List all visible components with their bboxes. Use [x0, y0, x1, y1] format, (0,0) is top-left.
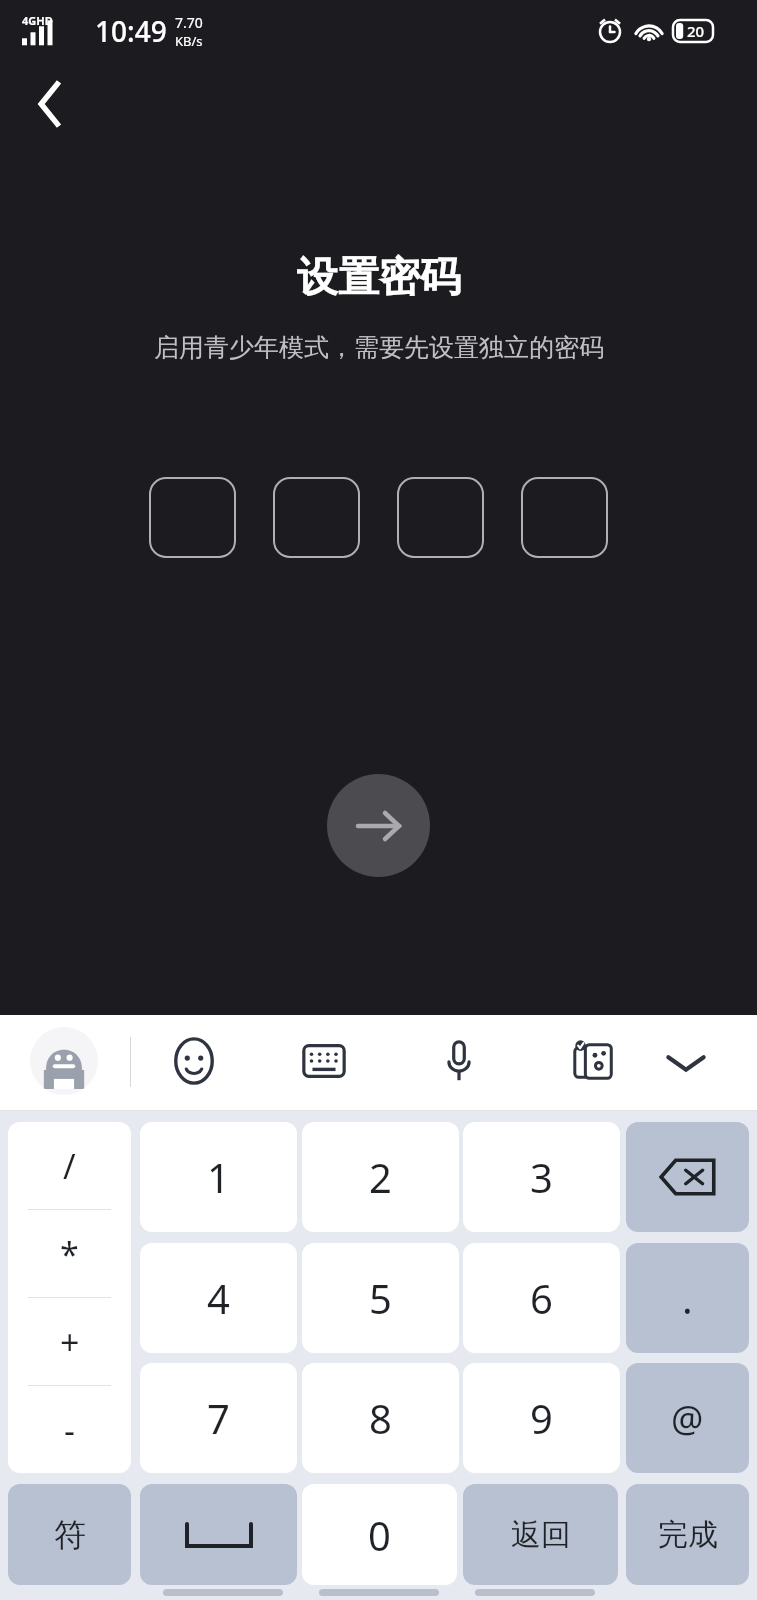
button[interactable]: 符 [8, 1484, 131, 1585]
staticText: 启用青少年模式，需要先设置独立的密码 [154, 332, 604, 363]
button[interactable]: 4 [140, 1243, 297, 1353]
staticText: 10:49 [95, 12, 167, 50]
staticText: KB/s [175, 32, 203, 50]
button[interactable]: 2 [302, 1122, 459, 1232]
staticText: + [60, 1319, 80, 1365]
staticText: 0 [368, 1508, 391, 1562]
button[interactable]: 9 [463, 1363, 620, 1473]
button[interactable]: 0 [302, 1484, 457, 1585]
staticText: 4GHD [22, 13, 53, 28]
button[interactable]: * [8, 1210, 131, 1297]
staticText: 7.70 [175, 13, 203, 32]
button[interactable]: / [8, 1122, 131, 1209]
staticText: 返回 [511, 1516, 571, 1554]
staticText: @ [671, 1394, 704, 1443]
button[interactable]: Input method avatar [30, 1027, 98, 1095]
staticText: 20 [687, 21, 705, 41]
staticText: 3 [530, 1150, 553, 1204]
button[interactable]: Keyboard [290, 1027, 358, 1095]
button[interactable]: Back [18, 72, 82, 136]
staticText: - [64, 1407, 75, 1453]
button[interactable]: + [8, 1298, 131, 1385]
staticText: 2 [369, 1150, 392, 1204]
staticText: 9 [530, 1391, 553, 1445]
staticText: 5 [369, 1271, 392, 1325]
button[interactable]: 5 [302, 1243, 459, 1353]
button[interactable] [149, 477, 236, 558]
staticText: * [60, 1231, 79, 1277]
button[interactable]: . [626, 1243, 749, 1353]
staticText: 4 [207, 1271, 230, 1325]
button[interactable]: Next [327, 774, 430, 877]
button[interactable]: 3 [463, 1122, 620, 1232]
staticText: / [63, 1143, 76, 1189]
staticText: 符 [54, 1515, 86, 1555]
staticText: 8 [369, 1391, 392, 1445]
staticText: 1 [207, 1150, 230, 1204]
button[interactable]: 8 [302, 1363, 459, 1473]
button[interactable]: Space [140, 1484, 297, 1585]
button[interactable]: Hide keyboard [650, 1027, 722, 1099]
button[interactable]: 7 [140, 1363, 297, 1473]
button[interactable]: Emoji [160, 1027, 228, 1095]
button[interactable]: - [8, 1386, 131, 1473]
button[interactable]: 完成 [626, 1484, 749, 1585]
staticText: . [682, 1271, 693, 1325]
button[interactable]: Voice input [425, 1027, 493, 1095]
staticText: 完成 [658, 1516, 718, 1554]
button[interactable] [397, 477, 484, 558]
button[interactable]: 6 [463, 1243, 620, 1353]
button[interactable]: @ [626, 1363, 749, 1473]
button[interactable]: 1 [140, 1122, 297, 1232]
button[interactable]: 返回 [463, 1484, 618, 1585]
staticText: 6 [530, 1271, 553, 1325]
button[interactable] [273, 477, 360, 558]
button[interactable]: Stickers [560, 1027, 628, 1095]
staticText: 设置密码 [297, 252, 461, 304]
staticText: 7 [207, 1391, 230, 1445]
button[interactable] [521, 477, 608, 558]
button[interactable]: Backspace [626, 1122, 749, 1232]
